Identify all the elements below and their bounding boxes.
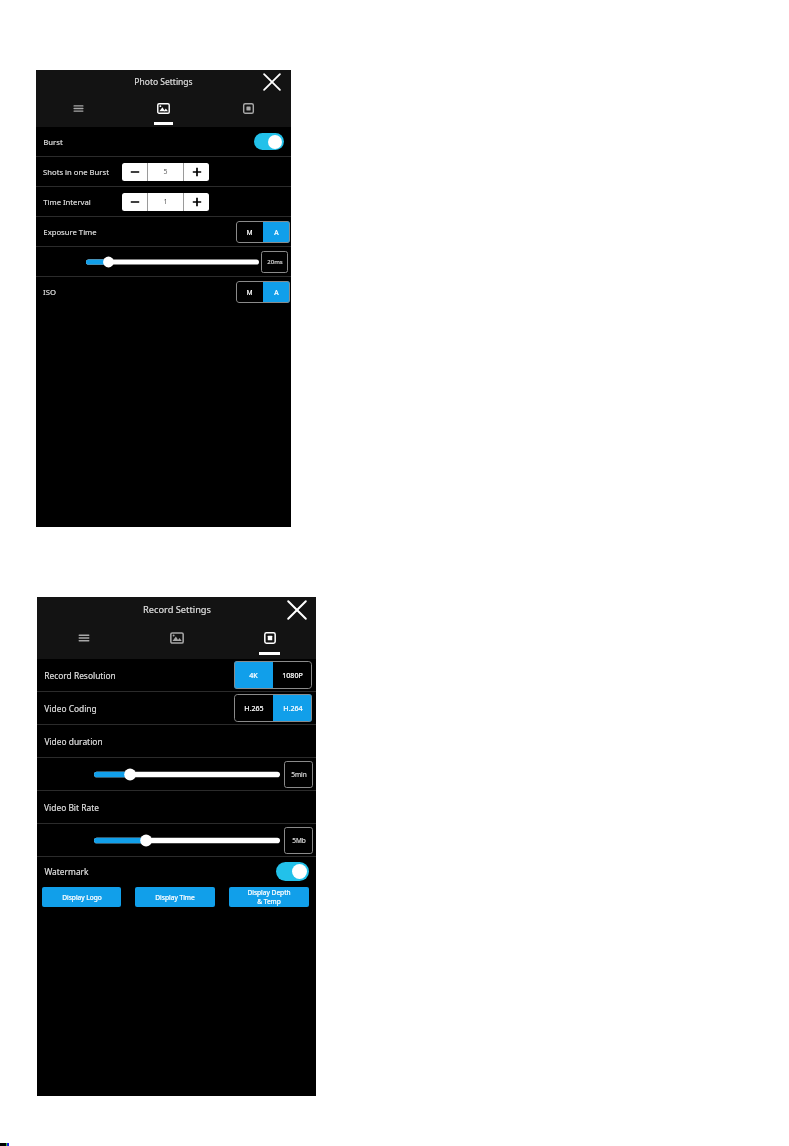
staticText: Video Bit Rate bbox=[44, 802, 99, 813]
button[interactable]: Burst bbox=[36, 127, 291, 156]
button[interactable]: Watermark on bbox=[276, 862, 309, 881]
staticText: Burst bbox=[43, 137, 63, 147]
button[interactable]: Photo settings bbox=[121, 93, 206, 127]
button[interactable]: Video Bit Rate bbox=[37, 791, 316, 823]
button[interactable]: 4K bbox=[234, 661, 273, 689]
button[interactable]: Close bbox=[287, 600, 307, 620]
staticText: Photo Settings bbox=[134, 76, 193, 88]
staticText: 5Mb bbox=[292, 836, 306, 845]
button[interactable]: 20ms bbox=[36, 247, 291, 276]
staticText: Display Logo bbox=[62, 893, 102, 902]
button[interactable]: Time Interval bbox=[36, 187, 291, 216]
button[interactable]: Burst on bbox=[254, 133, 284, 150]
staticText: Display Time bbox=[155, 893, 195, 902]
staticText: Watermark bbox=[44, 866, 89, 877]
button[interactable]: A bbox=[263, 221, 290, 243]
button[interactable]: Decrease bbox=[122, 193, 147, 211]
button[interactable]: ISO bbox=[36, 277, 291, 306]
staticText: Exposure Time bbox=[43, 227, 97, 237]
staticText: H.264 bbox=[283, 703, 303, 713]
button[interactable]: Exposure Time bbox=[36, 217, 291, 246]
button[interactable]: H.264 bbox=[273, 694, 312, 722]
button[interactable]: 5min bbox=[37, 758, 316, 790]
button[interactable]: Display Time bbox=[135, 887, 215, 907]
button[interactable]: Close bbox=[263, 73, 281, 91]
button[interactable]: Record settings bbox=[206, 93, 291, 127]
staticText: Display Depth & Temp bbox=[247, 888, 291, 906]
staticText: 5min bbox=[291, 770, 307, 779]
button[interactable]: M bbox=[236, 221, 263, 243]
button[interactable]: Photo settings bbox=[130, 622, 223, 659]
staticText: A bbox=[274, 288, 279, 297]
staticText: M bbox=[246, 288, 253, 297]
staticText: 4K bbox=[249, 670, 258, 680]
staticText: ISO bbox=[43, 287, 56, 297]
staticText: 20ms bbox=[267, 258, 283, 266]
staticText: Record Resolution bbox=[44, 670, 116, 681]
button[interactable]: Record Resolution bbox=[37, 659, 316, 691]
button[interactable]: Watermark bbox=[37, 857, 316, 886]
staticText: 1 bbox=[163, 197, 168, 207]
staticText: Video duration bbox=[44, 736, 103, 747]
staticText: M bbox=[246, 228, 253, 237]
button[interactable]: Display Depth & Temp bbox=[229, 887, 309, 907]
button[interactable]: General settings bbox=[36, 93, 121, 127]
button[interactable]: A bbox=[263, 281, 290, 303]
button[interactable]: Record settings bbox=[223, 622, 316, 659]
staticText: H.265 bbox=[244, 703, 264, 713]
staticText: 1080P bbox=[282, 670, 303, 680]
button[interactable]: General settings bbox=[37, 622, 130, 659]
staticText: Time Interval bbox=[43, 197, 91, 207]
button[interactable]: 1080P bbox=[273, 661, 312, 689]
button[interactable]: Display Logo bbox=[42, 887, 121, 907]
button[interactable]: Increase bbox=[184, 163, 209, 181]
button[interactable]: H.265 bbox=[234, 694, 273, 722]
button[interactable]: Increase bbox=[184, 193, 209, 211]
staticText: Shots in one Burst bbox=[43, 167, 109, 177]
button[interactable]: Decrease bbox=[122, 163, 147, 181]
button[interactable]: Video Coding bbox=[37, 692, 316, 724]
staticText: Record Settings bbox=[143, 603, 211, 616]
staticText: Video Coding bbox=[44, 703, 97, 714]
button[interactable]: Shots in one Burst bbox=[36, 157, 291, 186]
staticText: A bbox=[274, 228, 279, 237]
button[interactable]: 5Mb bbox=[37, 824, 316, 856]
button[interactable]: M bbox=[236, 281, 263, 303]
staticText: 5 bbox=[163, 167, 168, 177]
button[interactable]: Video duration bbox=[37, 725, 316, 757]
